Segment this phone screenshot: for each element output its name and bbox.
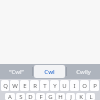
button[interactable]: S <box>16 93 25 100</box>
staticText: Y <box>53 82 57 90</box>
staticText: A <box>8 93 12 100</box>
button[interactable]: O <box>80 80 89 91</box>
button[interactable]: L <box>86 93 95 100</box>
button[interactable]: H <box>56 93 65 100</box>
staticText: Cwlly <box>76 68 91 76</box>
staticText: E <box>23 82 27 90</box>
button[interactable]: P <box>90 80 99 91</box>
staticText: F <box>39 93 43 100</box>
button[interactable]: F <box>36 93 45 100</box>
button[interactable]: U <box>60 80 69 91</box>
staticText: K <box>79 93 83 100</box>
button[interactable]: T <box>40 80 49 91</box>
staticText: W <box>12 82 18 90</box>
staticText: I <box>73 82 76 90</box>
staticText: L <box>89 93 93 100</box>
staticText: “Cwl” <box>9 68 24 76</box>
button[interactable]: W <box>10 80 19 91</box>
staticText: G <box>48 93 53 100</box>
button[interactable]: J <box>66 93 75 100</box>
staticText: D <box>28 93 33 100</box>
staticText: U <box>62 82 67 90</box>
staticText: S <box>19 93 23 100</box>
button[interactable]: “Cwl” <box>0 64 32 79</box>
button[interactable]: R <box>30 80 39 91</box>
button[interactable]: Cwl <box>34 65 65 78</box>
staticText: J <box>70 93 72 100</box>
staticText: T <box>43 82 47 90</box>
staticText: Cwl <box>44 68 55 76</box>
button[interactable]: K <box>76 93 85 100</box>
button[interactable]: E <box>20 80 29 91</box>
staticText: Q <box>3 82 8 90</box>
button[interactable]: I <box>70 80 79 91</box>
staticText: P <box>93 82 97 90</box>
button[interactable]: D <box>26 93 35 100</box>
button[interactable]: Cwlly <box>67 64 100 79</box>
button[interactable]: Y <box>50 80 59 91</box>
staticText: R <box>33 82 37 90</box>
button[interactable]: Q <box>1 80 9 91</box>
button[interactable]: A <box>5 93 15 100</box>
staticText: H <box>58 93 63 100</box>
staticText: O <box>82 82 87 90</box>
button[interactable]: G <box>46 93 55 100</box>
